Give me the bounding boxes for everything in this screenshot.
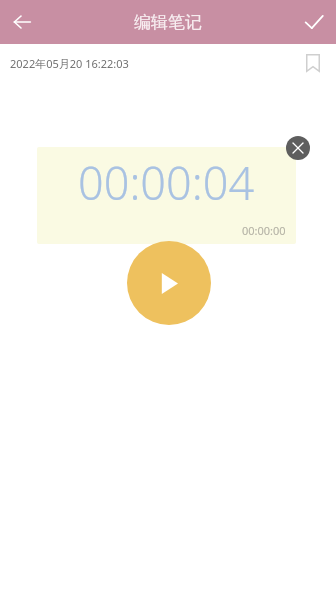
button[interactable]: 00:00:04 (37, 147, 296, 244)
staticText: 00:00:04 (78, 152, 255, 213)
staticText: 编辑笔记 (134, 12, 202, 33)
button[interactable]: Close (286, 136, 310, 160)
staticText: 2022年05月20 16:22:03 (10, 56, 129, 71)
button[interactable]: Start timer (127, 241, 211, 325)
button[interactable]: Save (292, 0, 336, 44)
button[interactable]: Bookmark (300, 50, 326, 76)
button[interactable]: Back (0, 0, 44, 44)
staticText: 00:00:00 (242, 223, 286, 238)
